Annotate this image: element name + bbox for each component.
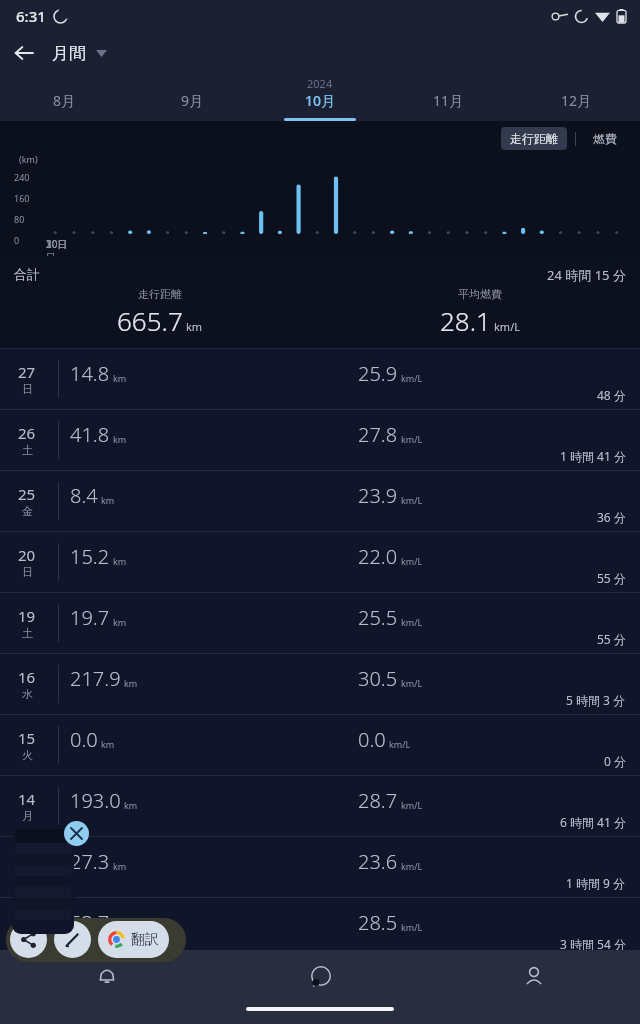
staticText: 5 時間 3 分: [566, 692, 626, 708]
button[interactable]: Close: [64, 821, 89, 846]
staticText: 15: [18, 728, 36, 748]
staticText: 20: [18, 545, 36, 565]
staticText: km: [113, 616, 127, 628]
staticText: 水: [22, 687, 33, 701]
staticText: km: [124, 799, 138, 811]
button[interactable]: 16: [0, 653, 640, 714]
button[interactable]: 14: [0, 775, 640, 836]
button[interactable]: Back: [0, 32, 48, 74]
staticText: 22.0: [358, 543, 398, 570]
staticText: 55 分: [597, 570, 626, 586]
staticText: 日: [22, 565, 33, 579]
staticText: 燃費: [593, 131, 617, 146]
button[interactable]: Help: [214, 950, 427, 1002]
staticText: 55 分: [597, 631, 626, 647]
staticText: km/L: [494, 319, 521, 334]
button[interactable]: 燃費: [584, 127, 626, 150]
button[interactable]: 10月: [256, 91, 384, 121]
staticText: 25: [18, 484, 36, 504]
staticText: 26: [18, 423, 36, 443]
staticText: 11月: [433, 91, 464, 110]
staticText: 13: [18, 850, 36, 870]
staticText: 月間: [52, 43, 86, 64]
staticText: km: [113, 860, 127, 872]
staticText: km: [113, 433, 127, 445]
button[interactable]: 走行距離: [501, 127, 567, 150]
staticText: 10月: [305, 91, 336, 110]
button[interactable]: 月間: [48, 37, 111, 70]
button[interactable]: Notifications: [0, 950, 214, 1002]
staticText: 217.9: [70, 665, 121, 692]
button[interactable]: 25: [0, 470, 640, 531]
staticText: 翻訳: [131, 931, 159, 949]
staticText: 1日: [46, 237, 56, 264]
staticText: 28.1: [440, 303, 491, 338]
staticText: 土: [22, 931, 33, 945]
staticText: 10日: [46, 237, 224, 251]
staticText: 19: [18, 606, 36, 626]
staticText: km: [101, 494, 115, 506]
staticText: km: [124, 677, 138, 689]
staticText: 27.8: [358, 421, 398, 448]
button[interactable]: Edit: [54, 921, 91, 958]
staticText: km: [113, 921, 127, 933]
staticText: 8月: [53, 91, 76, 110]
button[interactable]: 翻訳: [98, 921, 169, 958]
button[interactable]: Account: [427, 950, 640, 1002]
staticText: km/L: [401, 555, 423, 567]
staticText: 80: [14, 213, 38, 225]
staticText: km/L: [401, 494, 423, 506]
staticText: 3 時間 54 分: [560, 936, 626, 952]
staticText: 土: [22, 626, 33, 640]
staticText: 53.7: [70, 909, 110, 936]
staticText: 日: [22, 870, 33, 884]
staticText: 20日: [46, 237, 411, 251]
staticText: 走行距離: [138, 287, 182, 301]
staticText: 28.5: [358, 909, 398, 936]
button[interactable]: 19: [0, 592, 640, 653]
button[interactable]: 12月: [512, 91, 640, 121]
button[interactable]: 12: [0, 897, 640, 958]
staticText: 走行距離: [510, 131, 558, 146]
staticText: 月: [22, 809, 33, 823]
staticText: 平均燃費: [458, 287, 502, 301]
staticText: 27.3: [70, 848, 110, 875]
button[interactable]: 9月: [128, 91, 256, 121]
button[interactable]: 20: [0, 531, 640, 592]
button[interactable]: 27: [0, 348, 640, 409]
button[interactable]: Share: [10, 921, 47, 958]
staticText: 28.7: [358, 787, 398, 814]
staticText: 16: [18, 667, 36, 687]
button[interactable]: 15: [0, 714, 640, 775]
staticText: 1 時間 9 分: [566, 875, 626, 891]
staticText: 15.2: [70, 543, 110, 570]
staticText: 30.5: [358, 665, 398, 692]
staticText: 14: [18, 789, 36, 809]
staticText: km: [186, 319, 203, 334]
staticText: 0 分: [604, 753, 626, 769]
staticText: km/L: [401, 616, 423, 628]
staticText: 8.4: [70, 482, 98, 509]
staticText: 0: [14, 234, 38, 246]
staticText: (km): [19, 153, 38, 165]
staticText: 41.8: [70, 421, 110, 448]
button[interactable]: 26: [0, 409, 640, 470]
button[interactable]: 13: [0, 836, 640, 897]
staticText: 0.0: [358, 726, 386, 753]
staticText: 240: [14, 171, 38, 183]
staticText: 160: [14, 192, 38, 204]
staticText: 9月: [181, 91, 204, 110]
staticText: 12月: [561, 91, 592, 110]
button[interactable]: 8月: [0, 91, 128, 121]
staticText: km: [113, 372, 127, 384]
staticText: km/L: [401, 677, 423, 689]
staticText: km/L: [401, 921, 423, 933]
staticText: km/L: [401, 372, 423, 384]
staticText: 0.0: [70, 726, 98, 753]
staticText: 金: [22, 504, 33, 518]
staticText: km/L: [401, 433, 423, 445]
button[interactable]: 11月: [384, 91, 512, 121]
staticText: 土: [22, 443, 33, 457]
staticText: 19.7: [70, 604, 110, 631]
